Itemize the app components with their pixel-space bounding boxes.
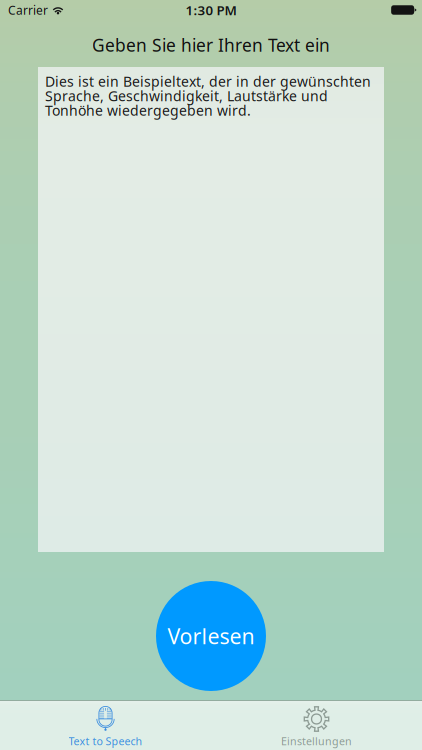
button[interactable]: Text to Speech	[0, 700, 211, 748]
staticText: Carrier	[8, 2, 48, 18]
staticText: Einstellungen	[281, 734, 352, 748]
button[interactable]: Vorlesen	[156, 581, 266, 691]
staticText: Geben Sie hier Ihren Text ein	[92, 33, 330, 56]
staticText: 1:30 PM	[185, 1, 236, 19]
button[interactable]: Einstellungen	[211, 700, 422, 748]
staticText: Vorlesen	[167, 622, 254, 650]
staticText: Dies ist ein Beispieltext, der in der ge…	[45, 74, 371, 117]
staticText: Text to Speech	[68, 734, 142, 748]
